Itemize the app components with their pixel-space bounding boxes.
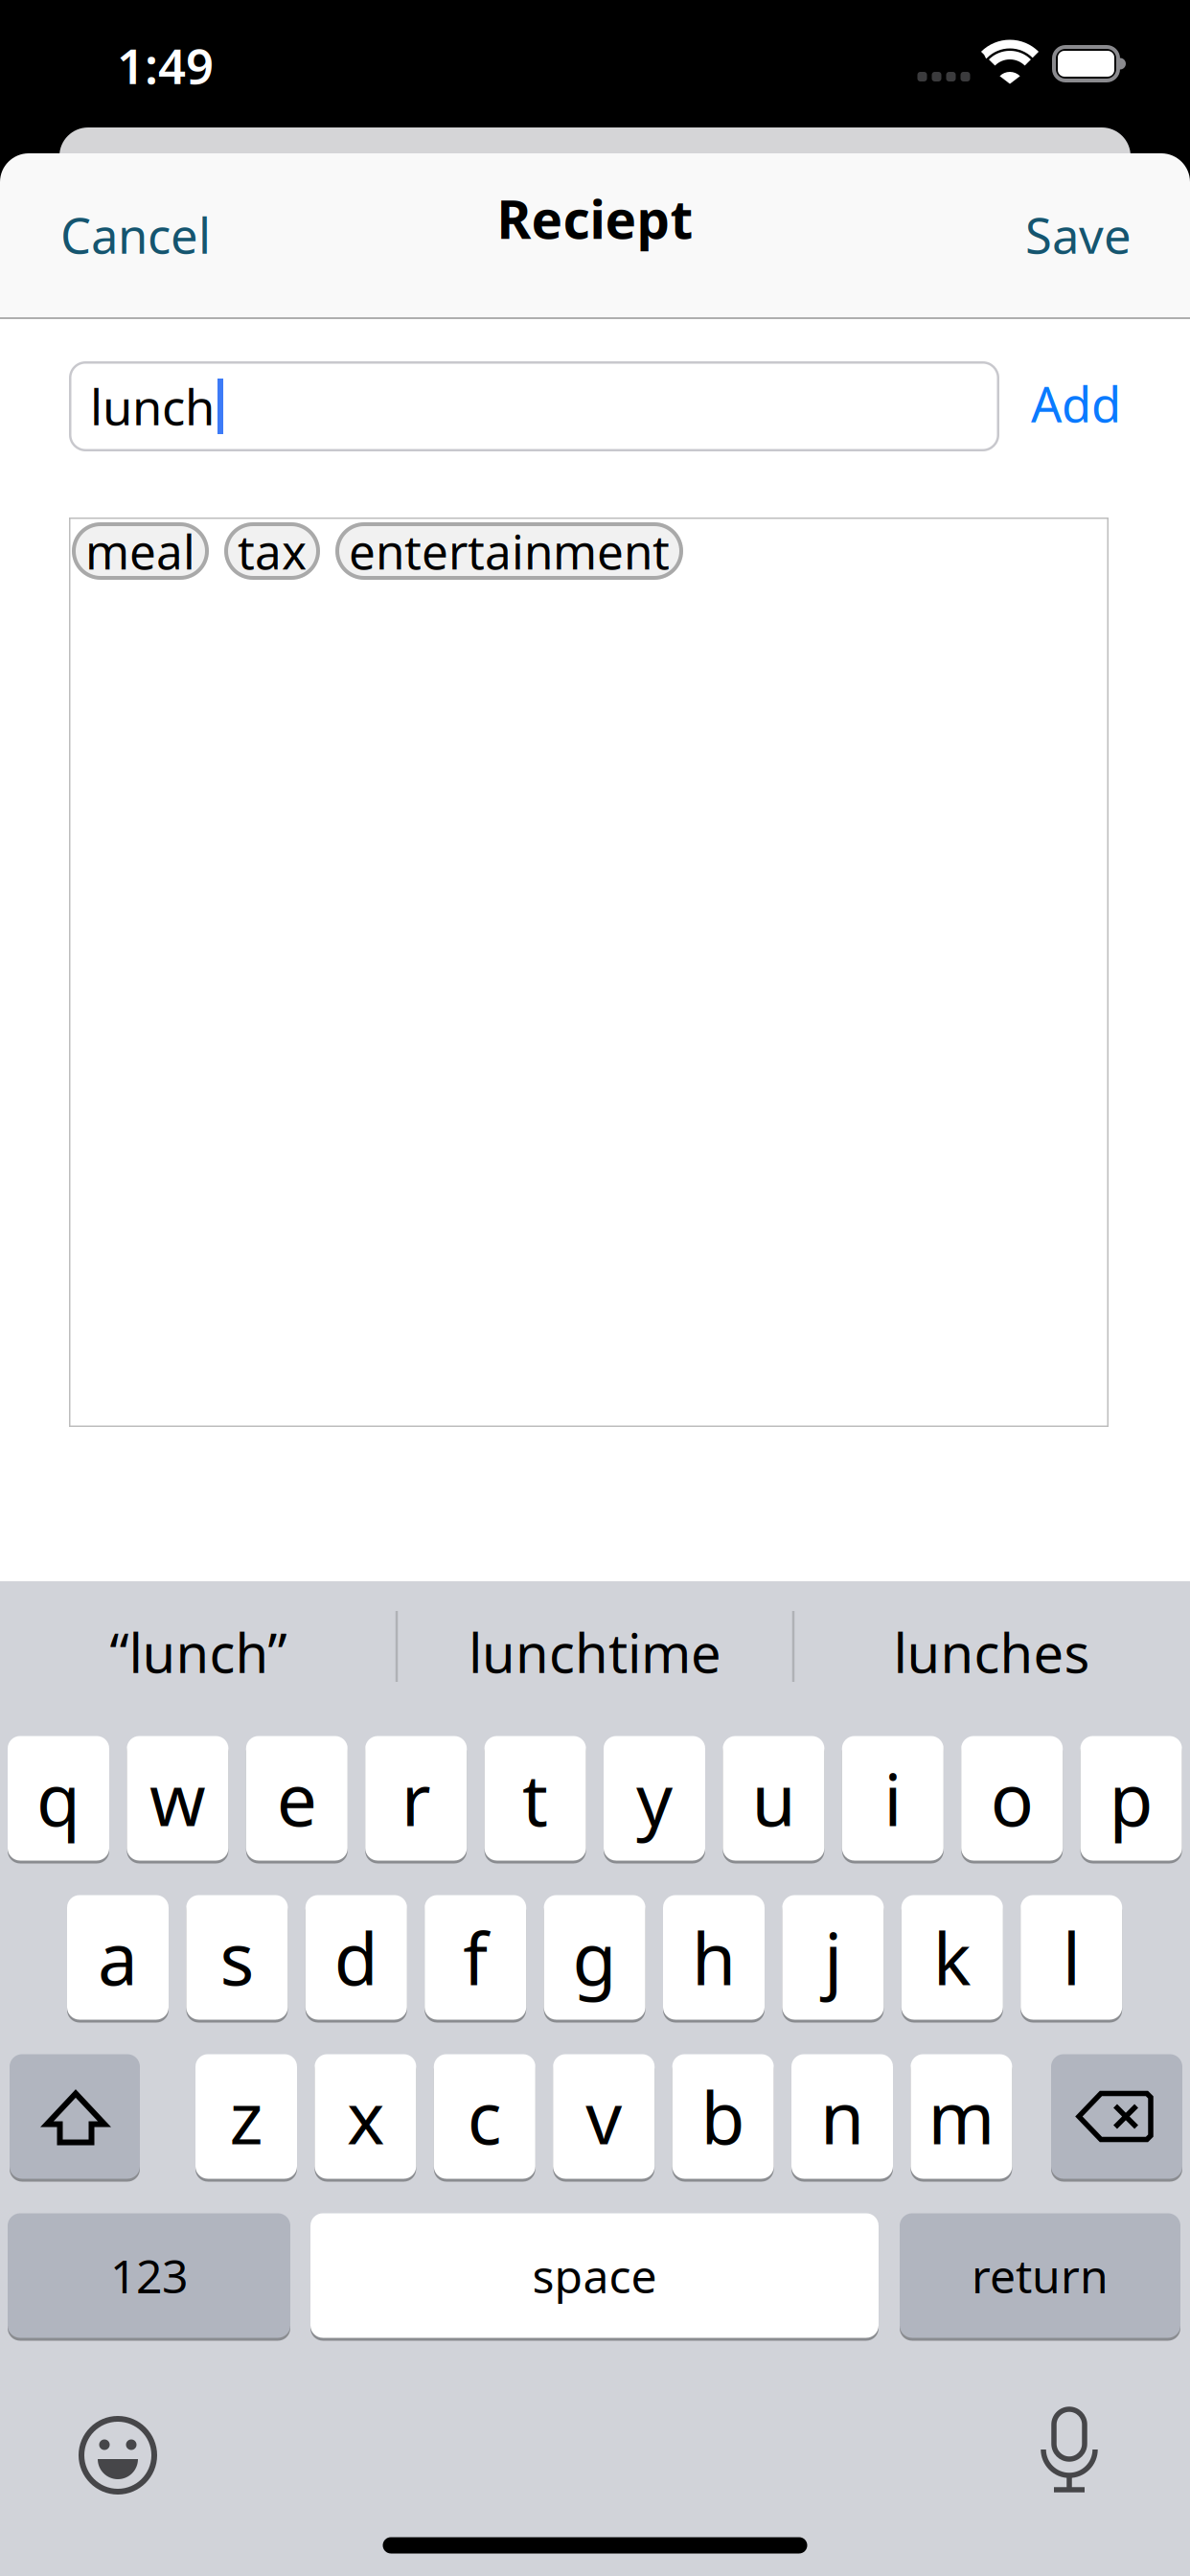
staticText: d bbox=[334, 1910, 378, 2005]
button[interactable]: tax bbox=[224, 522, 320, 580]
staticText: b bbox=[701, 2069, 745, 2164]
staticText: entertainment bbox=[349, 520, 670, 582]
button[interactable]: t bbox=[484, 1735, 586, 1862]
staticText: f bbox=[463, 1910, 488, 2005]
button[interactable]: z bbox=[195, 2053, 297, 2180]
staticText: Reciept bbox=[497, 184, 693, 253]
staticText: r bbox=[401, 1751, 431, 1846]
button[interactable]: b bbox=[672, 2053, 774, 2180]
staticText: x bbox=[347, 2069, 384, 2164]
button[interactable]: j bbox=[782, 1894, 884, 2021]
button[interactable]: 123 bbox=[8, 2212, 290, 2339]
staticText: l bbox=[1062, 1910, 1080, 2005]
button[interactable]: m bbox=[911, 2053, 1012, 2180]
button[interactable]: g bbox=[544, 1894, 645, 2021]
button[interactable]: lunches bbox=[893, 1617, 1090, 1688]
button[interactable]: y bbox=[604, 1735, 705, 1862]
button[interactable]: space bbox=[310, 2212, 879, 2339]
staticText: meal bbox=[85, 520, 195, 582]
button[interactable]: “lunch” bbox=[110, 1617, 287, 1688]
staticText: lunchtime bbox=[469, 1617, 721, 1688]
staticText: lunches bbox=[893, 1617, 1090, 1688]
staticText: lunch bbox=[90, 374, 215, 439]
button[interactable]: Save bbox=[1025, 203, 1132, 267]
staticText: t bbox=[522, 1751, 548, 1846]
staticText: o bbox=[990, 1751, 1034, 1846]
button[interactable]: s bbox=[186, 1894, 288, 2021]
button[interactable]: i bbox=[842, 1735, 944, 1862]
button[interactable]: c bbox=[434, 2053, 535, 2180]
button[interactable]: h bbox=[663, 1894, 765, 2021]
staticText: Cancel bbox=[60, 203, 211, 267]
button[interactable]: x bbox=[315, 2053, 416, 2180]
button[interactable]: Delete bbox=[1051, 2053, 1182, 2180]
staticText: s bbox=[220, 1910, 254, 2005]
button[interactable]: Add bbox=[1031, 371, 1121, 436]
button[interactable]: o bbox=[961, 1735, 1063, 1862]
staticText: space bbox=[532, 2245, 657, 2306]
staticText: n bbox=[820, 2069, 864, 2164]
button[interactable]: Shift bbox=[10, 2053, 140, 2180]
staticText: tax bbox=[238, 520, 307, 582]
staticText: Add bbox=[1031, 371, 1121, 436]
staticText: a bbox=[98, 1910, 138, 2005]
button[interactable]: v bbox=[553, 2053, 655, 2180]
button[interactable]: n bbox=[791, 2053, 893, 2180]
button[interactable]: e bbox=[246, 1735, 348, 1862]
staticText: y bbox=[636, 1751, 673, 1846]
button[interactable]: entertainment bbox=[335, 522, 683, 580]
button[interactable]: a bbox=[67, 1894, 169, 2021]
staticText: u bbox=[752, 1751, 796, 1846]
button[interactable]: q bbox=[8, 1735, 109, 1862]
button[interactable]: meal bbox=[72, 522, 209, 580]
staticText: return bbox=[972, 2245, 1109, 2306]
staticText: e bbox=[277, 1751, 317, 1846]
button[interactable]: p bbox=[1080, 1735, 1182, 1862]
button[interactable]: u bbox=[723, 1735, 824, 1862]
staticText: 1:49 bbox=[117, 33, 214, 97]
staticText: j bbox=[824, 1910, 842, 2005]
staticText: c bbox=[467, 2069, 502, 2164]
button[interactable]: lunchtime bbox=[469, 1617, 721, 1688]
staticText: m bbox=[928, 2069, 995, 2164]
staticText: 123 bbox=[110, 2245, 188, 2306]
button[interactable]: Dictate bbox=[1036, 2407, 1103, 2499]
staticText: p bbox=[1109, 1751, 1153, 1846]
button[interactable]: Cancel bbox=[60, 203, 211, 267]
staticText: v bbox=[586, 2069, 622, 2164]
button[interactable]: Emoji bbox=[77, 2414, 159, 2496]
staticText: q bbox=[36, 1751, 80, 1846]
staticText: h bbox=[692, 1910, 736, 2005]
button[interactable]: return bbox=[900, 2212, 1180, 2339]
staticText: “lunch” bbox=[110, 1617, 287, 1688]
button[interactable]: l bbox=[1021, 1894, 1122, 2021]
button[interactable]: f bbox=[425, 1894, 526, 2021]
button[interactable]: d bbox=[305, 1894, 407, 2021]
staticText: Save bbox=[1025, 203, 1132, 267]
button[interactable]: w bbox=[127, 1735, 228, 1862]
staticText: w bbox=[149, 1751, 206, 1846]
staticText: g bbox=[573, 1910, 617, 2005]
staticText: z bbox=[229, 2069, 263, 2164]
staticText: k bbox=[933, 1910, 971, 2005]
button[interactable]: r bbox=[365, 1735, 467, 1862]
staticText: i bbox=[884, 1751, 902, 1846]
button[interactable]: k bbox=[901, 1894, 1003, 2021]
